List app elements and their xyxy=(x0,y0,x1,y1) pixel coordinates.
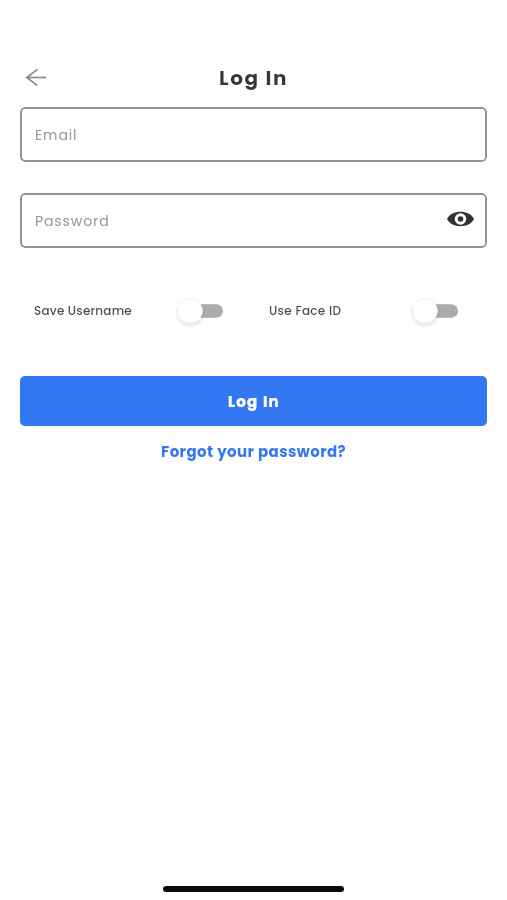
button[interactable]: Email xyxy=(20,107,487,162)
staticText: Password xyxy=(35,211,110,231)
button[interactable]: Forgot your password? xyxy=(151,437,357,466)
button[interactable]: Back xyxy=(17,60,55,94)
staticText: Use Face ID xyxy=(269,302,342,319)
button[interactable]: Save Username xyxy=(177,296,223,324)
button[interactable]: Password xyxy=(20,193,487,248)
staticText: Log In xyxy=(219,64,289,92)
staticText: Email xyxy=(35,125,78,145)
staticText: Save Username xyxy=(34,302,132,319)
button[interactable]: Use Face ID xyxy=(412,296,458,324)
button[interactable]: Show password xyxy=(441,200,479,238)
button[interactable]: Log In xyxy=(20,376,487,426)
staticText: Log In xyxy=(228,391,280,412)
